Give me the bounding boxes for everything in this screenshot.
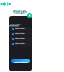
button[interactable]: Play video bbox=[27, 13, 32, 18]
staticText: WHAT IT COVERS bbox=[13, 8, 27, 14]
staticText: Coverage bbox=[10, 22, 21, 25]
staticText: Item title bbox=[15, 32, 25, 35]
staticText: Get started bbox=[14, 60, 28, 63]
button[interactable]: Get started bbox=[11, 59, 30, 63]
staticText: Item title bbox=[15, 42, 25, 45]
button[interactable]: Item title bbox=[10, 37, 32, 41]
staticText: Item title bbox=[15, 37, 25, 40]
button[interactable]: Item title bbox=[10, 32, 32, 36]
staticText: Item title bbox=[15, 27, 25, 30]
button[interactable]: Item title bbox=[10, 27, 32, 31]
staticText: Everything you need bbox=[13, 9, 27, 24]
button[interactable]: Item title bbox=[10, 42, 32, 46]
button[interactable]: Home bbox=[0, 2, 11, 6]
